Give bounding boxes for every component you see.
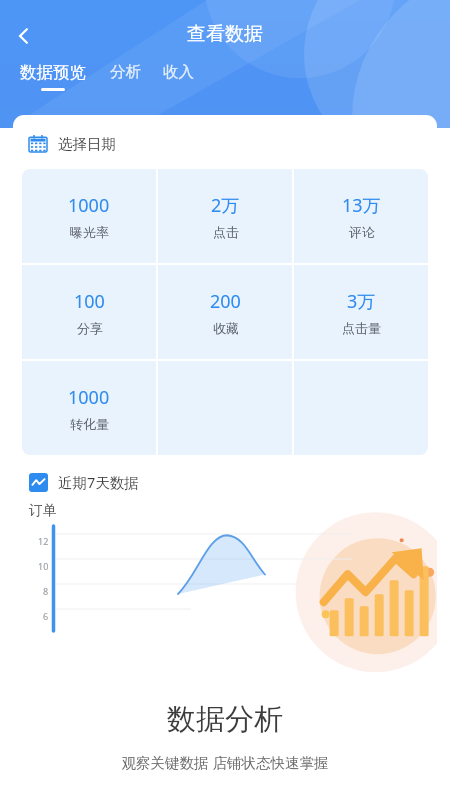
staticText: 2万 (211, 193, 240, 218)
staticText: 近期7天数据 (58, 472, 139, 492)
staticText: 评论 (349, 224, 375, 240)
staticText: 13万 (342, 193, 381, 218)
button[interactable]: 1000 (22, 169, 156, 263)
staticText: 6 (43, 610, 49, 622)
button[interactable]: 分析 (110, 62, 141, 87)
staticText: 数据分析 (13, 701, 437, 738)
staticText: 3万 (347, 289, 376, 314)
staticText: 曝光率 (70, 224, 109, 240)
staticText: 分析 (110, 62, 141, 82)
staticText: 收藏 (213, 320, 239, 336)
button[interactable]: 100 (22, 265, 156, 359)
staticText: 收入 (163, 62, 194, 82)
staticText: 查看数据 (0, 22, 450, 46)
staticText: 8 (43, 585, 49, 597)
staticText: 观察关键数据 店铺状态快速掌握 (13, 752, 437, 772)
button[interactable]: 1000 (22, 361, 156, 455)
staticText: 点击量 (342, 320, 381, 336)
staticText: 订单 (29, 502, 57, 520)
staticText: 分享 (77, 320, 103, 336)
button[interactable]: 选择日期 (13, 115, 437, 169)
button[interactable]: 13万 (294, 169, 428, 263)
staticText: 1000 (68, 385, 110, 410)
staticText: 12 (38, 535, 49, 547)
button[interactable]: 2万 (158, 169, 292, 263)
staticText: 选择日期 (58, 135, 116, 153)
staticText: 100 (74, 289, 105, 314)
button[interactable]: 数据预览 (20, 62, 86, 91)
button[interactable]: Back (6, 18, 42, 54)
staticText: 点击 (213, 224, 239, 240)
staticText: 转化量 (70, 416, 109, 432)
button[interactable]: 收入 (163, 62, 194, 87)
button[interactable]: 200 (158, 265, 292, 359)
staticText: 1000 (68, 193, 110, 218)
button[interactable]: 3万 (294, 265, 428, 359)
staticText: 数据预览 (20, 62, 86, 83)
staticText: 10 (38, 560, 49, 572)
staticText: 200 (210, 289, 241, 314)
